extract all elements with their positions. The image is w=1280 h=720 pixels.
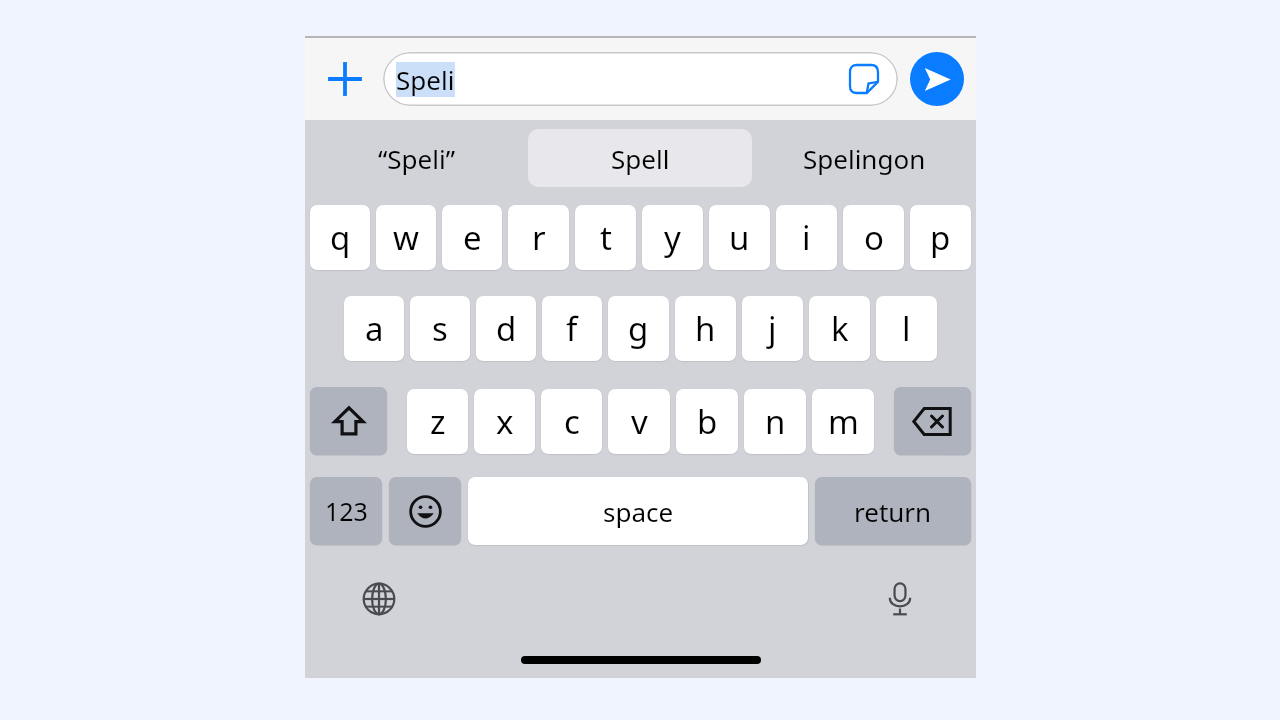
staticText: Spell — [611, 141, 670, 176]
staticText: 123 — [325, 494, 368, 528]
button[interactable]: p — [910, 205, 971, 270]
staticText: g — [628, 306, 649, 351]
button[interactable]: v — [608, 389, 670, 454]
button[interactable]: r — [508, 205, 569, 270]
staticText: Spelingon — [803, 141, 926, 176]
staticText: f — [566, 306, 578, 351]
staticText: s — [432, 306, 448, 351]
staticText: return — [854, 494, 932, 529]
button[interactable]: Speli — [383, 52, 898, 106]
button[interactable]: Backspace — [894, 387, 971, 455]
staticText: b — [697, 399, 718, 444]
button[interactable]: Add attachment — [321, 55, 369, 103]
button[interactable]: z — [407, 389, 468, 454]
staticText: a — [365, 306, 384, 351]
staticText: Speli — [396, 62, 455, 97]
button[interactable]: m — [812, 389, 874, 454]
button[interactable]: Spell — [528, 129, 752, 187]
staticText: h — [695, 306, 716, 351]
button[interactable]: u — [709, 205, 770, 270]
button[interactable]: w — [376, 205, 436, 270]
button[interactable]: d — [476, 296, 536, 361]
staticText: e — [463, 215, 482, 260]
button[interactable]: f — [542, 296, 602, 361]
staticText: q — [330, 215, 351, 260]
staticText: y — [664, 215, 681, 260]
staticText: j — [768, 306, 777, 351]
button[interactable]: Stickers — [846, 61, 882, 97]
button[interactable]: Shift — [310, 387, 387, 455]
button[interactable]: Switch keyboard — [355, 575, 403, 623]
staticText: space — [603, 494, 674, 529]
button[interactable]: Dictation — [876, 575, 924, 623]
button[interactable]: “Speli” — [305, 129, 528, 187]
button[interactable]: x — [474, 389, 535, 454]
staticText: i — [802, 215, 811, 260]
button[interactable]: o — [843, 205, 904, 270]
button[interactable]: a — [344, 296, 404, 361]
button[interactable]: t — [575, 205, 636, 270]
button[interactable]: Send — [910, 52, 964, 106]
staticText: w — [393, 215, 419, 260]
button[interactable]: q — [310, 205, 370, 270]
button[interactable]: 123 — [310, 477, 382, 545]
staticText: u — [729, 215, 750, 260]
button[interactable]: c — [541, 389, 602, 454]
staticText: d — [496, 306, 517, 351]
staticText: m — [828, 399, 859, 444]
button[interactable]: y — [642, 205, 703, 270]
button[interactable]: Spelingon — [752, 129, 976, 187]
button[interactable]: g — [608, 296, 669, 361]
staticText: k — [831, 306, 849, 351]
button[interactable]: Emoji — [389, 477, 461, 545]
staticText: n — [765, 399, 786, 444]
staticText: x — [496, 399, 514, 444]
staticText: r — [532, 215, 546, 260]
staticText: z — [430, 399, 446, 444]
button[interactable]: j — [742, 296, 803, 361]
button[interactable]: i — [776, 205, 837, 270]
button[interactable]: space — [468, 477, 808, 545]
staticText: o — [864, 215, 884, 260]
button[interactable]: b — [676, 389, 738, 454]
staticText: “Speli” — [378, 141, 456, 176]
button[interactable]: l — [876, 296, 937, 361]
button[interactable]: s — [410, 296, 470, 361]
button[interactable]: n — [744, 389, 806, 454]
staticText: v — [631, 399, 648, 444]
button[interactable]: k — [809, 296, 870, 361]
staticText: p — [930, 215, 951, 260]
staticText: l — [902, 306, 911, 351]
button[interactable]: return — [815, 477, 971, 545]
staticText: c — [564, 399, 580, 444]
button[interactable]: h — [675, 296, 736, 361]
staticText: t — [600, 215, 612, 260]
button[interactable]: e — [442, 205, 502, 270]
